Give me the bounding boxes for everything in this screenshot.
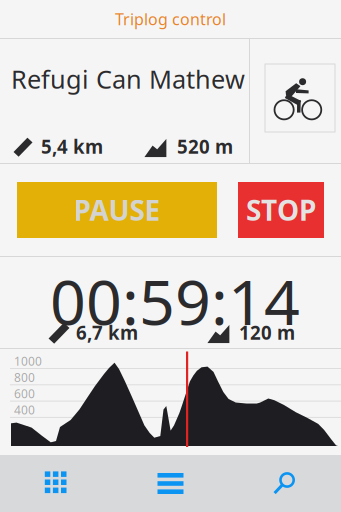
button[interactable]: Search [227,455,341,512]
staticText: Triplog control [115,8,226,30]
staticText: 5,4 km [41,134,103,159]
staticText: STOP [246,191,316,229]
staticText: 800 [14,369,35,385]
staticText: 520 m [177,134,233,159]
staticText: 1000 [14,353,42,369]
staticText: Refugi Can Mathew [11,62,245,96]
staticText: 600 [14,386,35,401]
staticText: 00:59:14 [50,259,300,342]
button[interactable]: Grid [0,455,114,512]
staticText: 400 [14,402,35,418]
staticText: 120 m [239,320,295,345]
button[interactable]: STOP [238,182,324,238]
button[interactable]: PAUSE [17,182,217,238]
button[interactable]: List [114,455,227,512]
staticText: 6,7 km [76,320,138,345]
staticText: PAUSE [73,191,160,229]
